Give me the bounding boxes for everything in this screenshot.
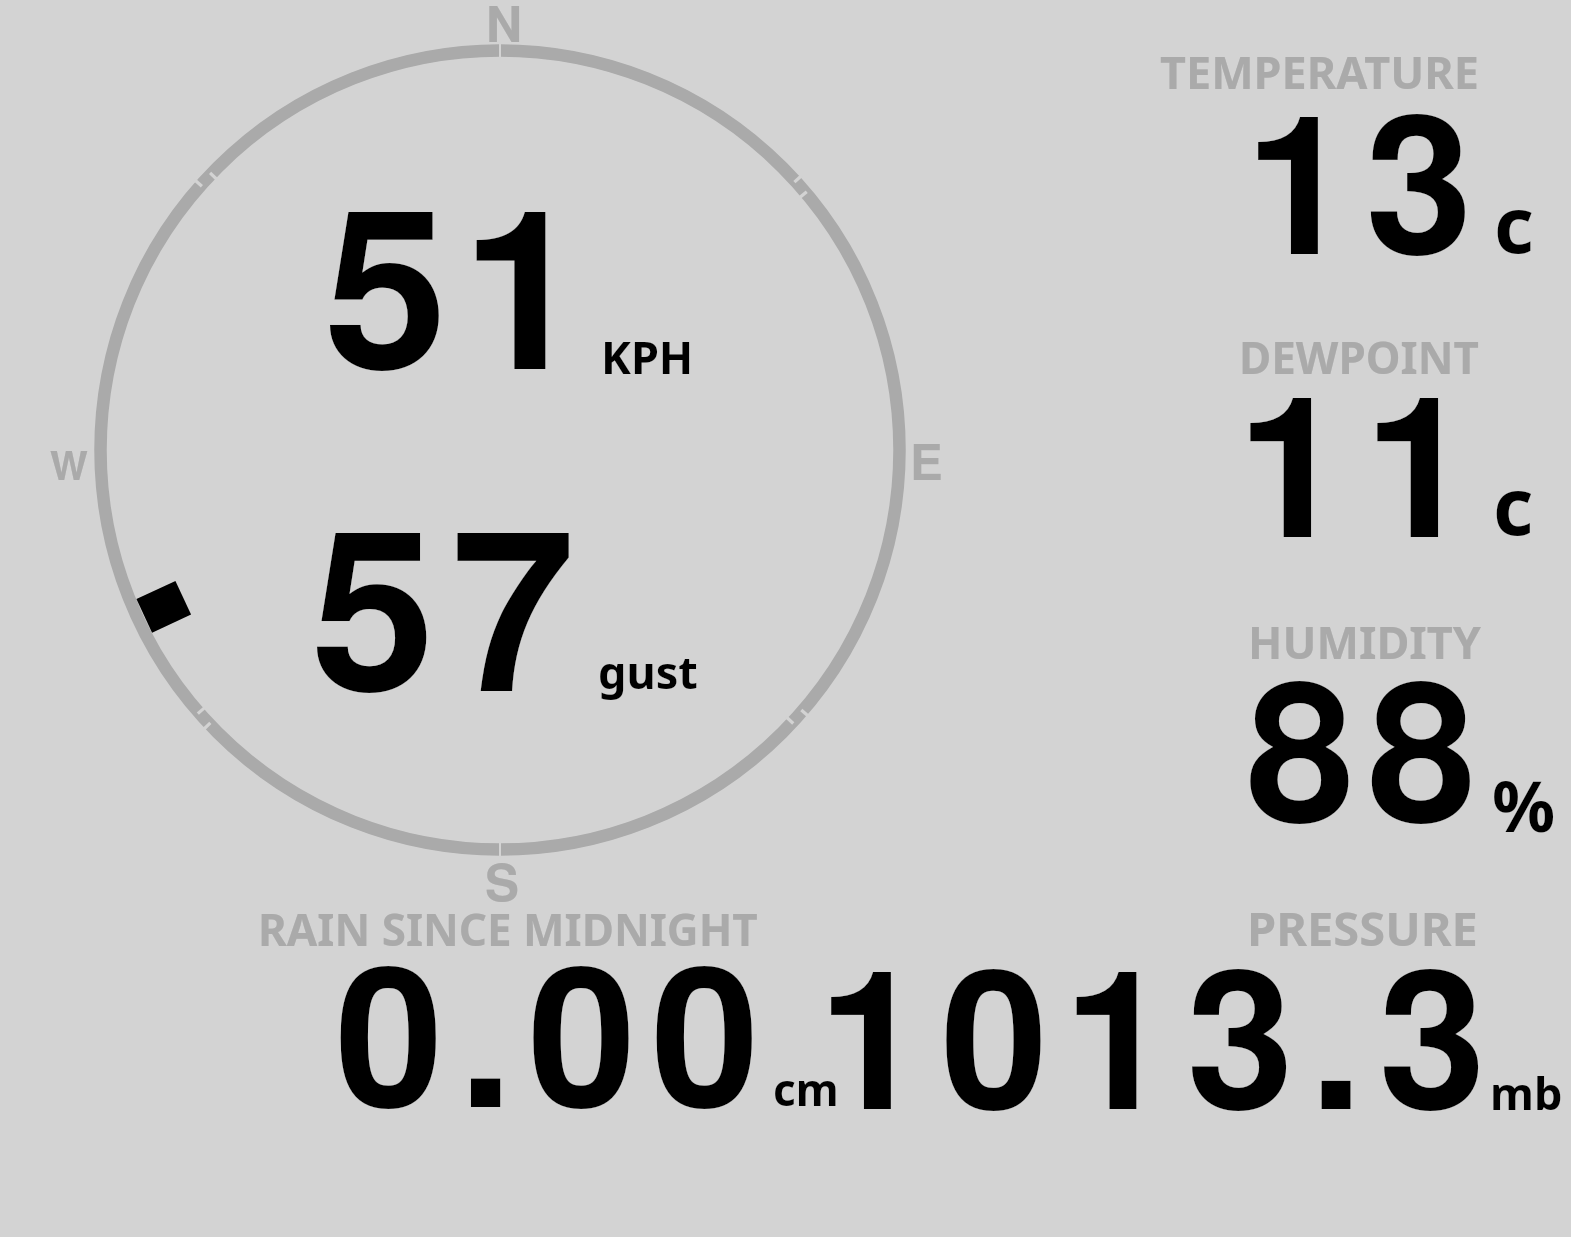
staticText: % <box>1492 757 1556 852</box>
button[interactable]: Dewpoint 11 degrees Celsius <box>1140 315 1571 595</box>
button[interactable]: Pressure 1013.3 millibar <box>860 890 1571 1130</box>
staticText: DEWPOINT <box>1239 327 1479 387</box>
button[interactable]: Humidity 88 percent <box>1140 600 1571 880</box>
staticText: gust <box>598 641 698 702</box>
staticText: TEMPERATURE <box>1160 41 1479 102</box>
staticText: RAIN SINCE MIDNIGHT <box>258 899 758 959</box>
staticText: E <box>910 425 943 495</box>
button[interactable]: Wind 51 KPH, gusting 57, direction south… <box>60 10 960 890</box>
staticText: 11 <box>1237 316 1491 597</box>
staticText: mb <box>1490 1062 1563 1123</box>
staticText: 88 <box>1246 603 1489 882</box>
staticText: 57 <box>311 440 591 759</box>
staticText: cm <box>773 1059 839 1119</box>
staticText: W <box>50 435 88 492</box>
button[interactable]: Rain since midnight 0.00 cm <box>250 890 850 1130</box>
staticText: 51 <box>324 119 599 437</box>
staticText: N <box>486 0 523 58</box>
button[interactable]: Temperature 13 degrees Celsius <box>1140 30 1571 310</box>
staticText: 13 <box>1245 37 1486 313</box>
staticText: KPH <box>601 326 694 387</box>
staticText: c <box>1493 452 1534 558</box>
staticText: S <box>485 844 520 917</box>
staticText: c <box>1494 171 1534 276</box>
staticText: 1013.3 <box>818 892 1502 1168</box>
staticText: 0.00 <box>335 888 775 1167</box>
staticText: HUMIDITY <box>1248 611 1481 672</box>
staticText: PRESSURE <box>1247 896 1478 960</box>
